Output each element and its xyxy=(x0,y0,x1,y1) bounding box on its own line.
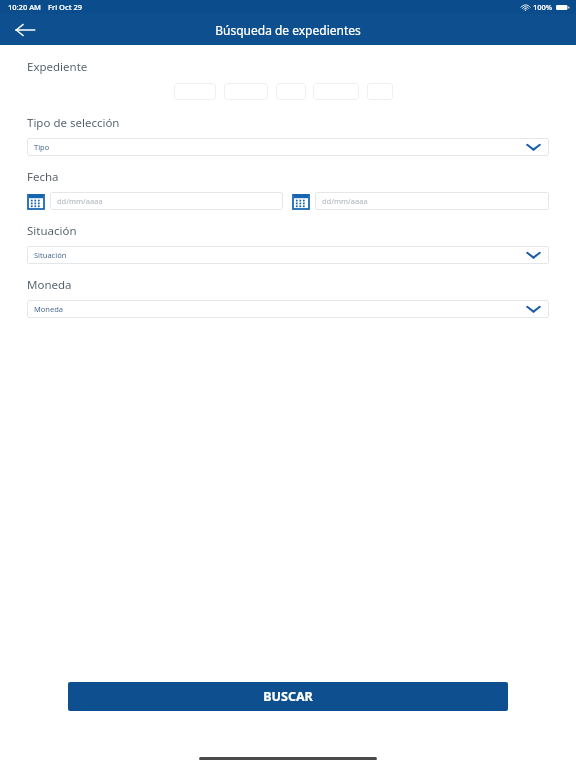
button[interactable]: Situación xyxy=(27,246,549,264)
staticText: Expediente xyxy=(27,59,88,75)
staticText: Situación xyxy=(34,250,67,260)
staticText: Moneda xyxy=(27,277,72,293)
staticText: Tipo de selección xyxy=(27,115,120,131)
button[interactable]: Pick date xyxy=(292,193,309,210)
staticText: Moneda xyxy=(34,304,64,314)
staticText: BUSCAR xyxy=(263,688,313,705)
button[interactable]: Expediente field xyxy=(367,83,393,100)
staticText: 100% xyxy=(533,2,553,12)
staticText: Búsqueda de expedientes xyxy=(215,22,361,38)
button[interactable]: dd/mm/aaaa xyxy=(315,192,549,210)
button[interactable]: Tipo xyxy=(27,138,549,156)
button[interactable]: Pick date xyxy=(27,193,44,210)
staticText: Fecha xyxy=(27,169,59,185)
staticText: dd/mm/aaaa xyxy=(57,196,103,206)
button[interactable]: dd/mm/aaaa xyxy=(50,192,283,210)
button[interactable]: Expediente field xyxy=(313,83,359,100)
button[interactable]: Back xyxy=(8,14,42,45)
staticText: Situación xyxy=(27,223,77,239)
button[interactable]: Expediente field xyxy=(276,83,306,100)
button[interactable]: Expediente field xyxy=(224,83,268,100)
button[interactable]: Moneda xyxy=(27,300,549,318)
staticText: Tipo xyxy=(34,142,50,152)
staticText: dd/mm/aaaa xyxy=(322,196,368,206)
staticText: Fri Oct 29 xyxy=(48,2,83,12)
staticText: 10:20 AM xyxy=(8,2,41,12)
button[interactable]: Expediente field xyxy=(174,83,216,100)
button[interactable]: BUSCAR xyxy=(68,682,508,711)
